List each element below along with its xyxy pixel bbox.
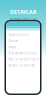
staticText: Müşteri destek hattı <box>8 64 35 67</box>
staticText: Kargo <box>8 45 16 49</box>
staticText: RENKLERİ VE İŞLEMLERİ <box>10 17 36 28</box>
staticText: Teslimat adresi bilgisi <box>8 51 37 55</box>
staticText: DETAYLAR <box>10 8 36 16</box>
staticText: Sipariş bilgileri <box>8 33 29 36</box>
staticText: İade ve değişim işlemleri <box>8 58 40 61</box>
staticText: Ödeme <box>8 39 18 43</box>
